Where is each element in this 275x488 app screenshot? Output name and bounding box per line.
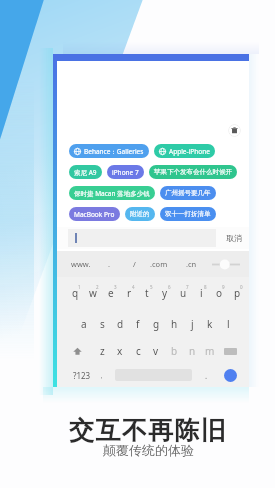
button[interactable]: ， [94, 364, 108, 386]
button[interactable]: .com [147, 251, 171, 277]
button[interactable]: s [93, 313, 111, 335]
button[interactable]: n [183, 340, 201, 362]
staticText: r [127, 286, 132, 300]
button[interactable]: MacBook Pro [69, 207, 120, 221]
button[interactable]: Toggle keyboard [207, 251, 245, 277]
button[interactable]: 8 [192, 282, 210, 304]
button[interactable]: 9 [210, 282, 228, 304]
button[interactable]: 3 [102, 282, 120, 304]
staticText: . [205, 370, 208, 381]
button[interactable]: . [199, 364, 213, 386]
staticText: j [191, 317, 194, 331]
staticText: 广州摇号要几年 [165, 189, 211, 197]
button[interactable]: Clear history [228, 124, 241, 137]
staticText: 7 [186, 284, 189, 290]
staticText: o [216, 286, 223, 300]
staticText: 索尼 A9 [74, 168, 97, 177]
button[interactable]: ?123 [67, 364, 97, 386]
staticText: k [207, 317, 213, 331]
button[interactable]: 2 [84, 282, 102, 304]
button[interactable]: iPhone 7 [107, 165, 144, 179]
staticText: 2 [96, 284, 99, 290]
button[interactable]: a [75, 313, 93, 335]
staticText: 0 [240, 284, 243, 290]
button[interactable]: Shift [65, 340, 89, 362]
button[interactable]: / [122, 251, 146, 277]
staticText: d [117, 317, 124, 331]
staticText: iPhone 7 [112, 168, 139, 177]
staticText: 8 [204, 284, 207, 290]
button[interactable]: 0 [228, 282, 246, 304]
staticText: l [227, 317, 230, 331]
button[interactable]: 双十一打折清单 [160, 207, 216, 221]
button[interactable]: x [111, 340, 129, 362]
staticText: 保时捷 Macan 落地多少钱 [74, 189, 150, 198]
button[interactable]: 4 [120, 282, 138, 304]
button[interactable]: j [183, 313, 201, 335]
button[interactable]: z [93, 340, 111, 362]
staticText: g [153, 317, 160, 331]
staticText: y [162, 286, 168, 300]
staticText: . [108, 259, 111, 269]
staticText: c [136, 344, 141, 358]
button[interactable]: 保时捷 Macan 落地多少钱 [69, 186, 155, 200]
staticText: q [72, 286, 79, 300]
button[interactable]: l [219, 313, 237, 335]
button[interactable]: 7 [174, 282, 192, 304]
staticText: n [189, 344, 196, 358]
staticText: .cn [186, 259, 197, 269]
staticText: ?123 [73, 370, 91, 381]
button[interactable]: b [165, 340, 183, 362]
staticText: Behance：Galleries [84, 147, 144, 156]
staticText: 6 [168, 284, 171, 290]
button[interactable]: Apple-iPhone [154, 144, 215, 158]
staticText: m [205, 344, 215, 358]
button[interactable]: Behance：Galleries [69, 144, 149, 158]
button[interactable]: 苹果下个发布会什么时候开 [149, 165, 237, 179]
button[interactable]: 附近的 [125, 207, 155, 221]
staticText: 交互不再陈旧 [69, 415, 228, 446]
staticText: .com [150, 259, 168, 269]
staticText: p [234, 286, 241, 300]
staticText: w [89, 286, 97, 300]
staticText: s [100, 317, 105, 331]
button[interactable]: 取消 [220, 227, 248, 249]
staticText: 双十一打折清单 [165, 210, 211, 218]
button[interactable]: Go [218, 364, 242, 386]
button[interactable]: 6 [156, 282, 174, 304]
staticText: f [136, 317, 140, 331]
staticText: t [145, 286, 149, 300]
staticText: x [117, 344, 123, 358]
button[interactable]: h [165, 313, 183, 335]
staticText: 附近的 [130, 210, 150, 218]
button[interactable]: 广州摇号要几年 [160, 186, 216, 200]
button[interactable]: k [201, 313, 219, 335]
button[interactable]: m [201, 340, 219, 362]
button[interactable]: d [111, 313, 129, 335]
button[interactable]: 1 [66, 282, 84, 304]
staticText: v [153, 344, 159, 358]
button[interactable]: .cn [179, 251, 203, 277]
staticText: b [171, 344, 178, 358]
button[interactable]: f [129, 313, 147, 335]
staticText: u [180, 286, 187, 300]
staticText: z [100, 344, 105, 358]
button[interactable]: www. [69, 251, 93, 277]
staticText: e [108, 286, 114, 300]
staticText: 4 [132, 284, 135, 290]
staticText: 苹果下个发布会什么时候开 [154, 168, 232, 176]
staticText: Apple-iPhone [169, 147, 210, 156]
staticText: i [200, 286, 203, 300]
button[interactable]: 索尼 A9 [69, 165, 102, 179]
button[interactable]: 5 [138, 282, 156, 304]
staticText: 颠覆传统的体验 [103, 442, 194, 458]
staticText: ， [98, 371, 105, 380]
staticText: 9 [222, 284, 225, 290]
button[interactable]: c [129, 340, 147, 362]
staticText: 3 [114, 284, 117, 290]
button[interactable]: Backspace [217, 340, 243, 362]
button[interactable]: v [147, 340, 165, 362]
button[interactable]: g [147, 313, 165, 335]
